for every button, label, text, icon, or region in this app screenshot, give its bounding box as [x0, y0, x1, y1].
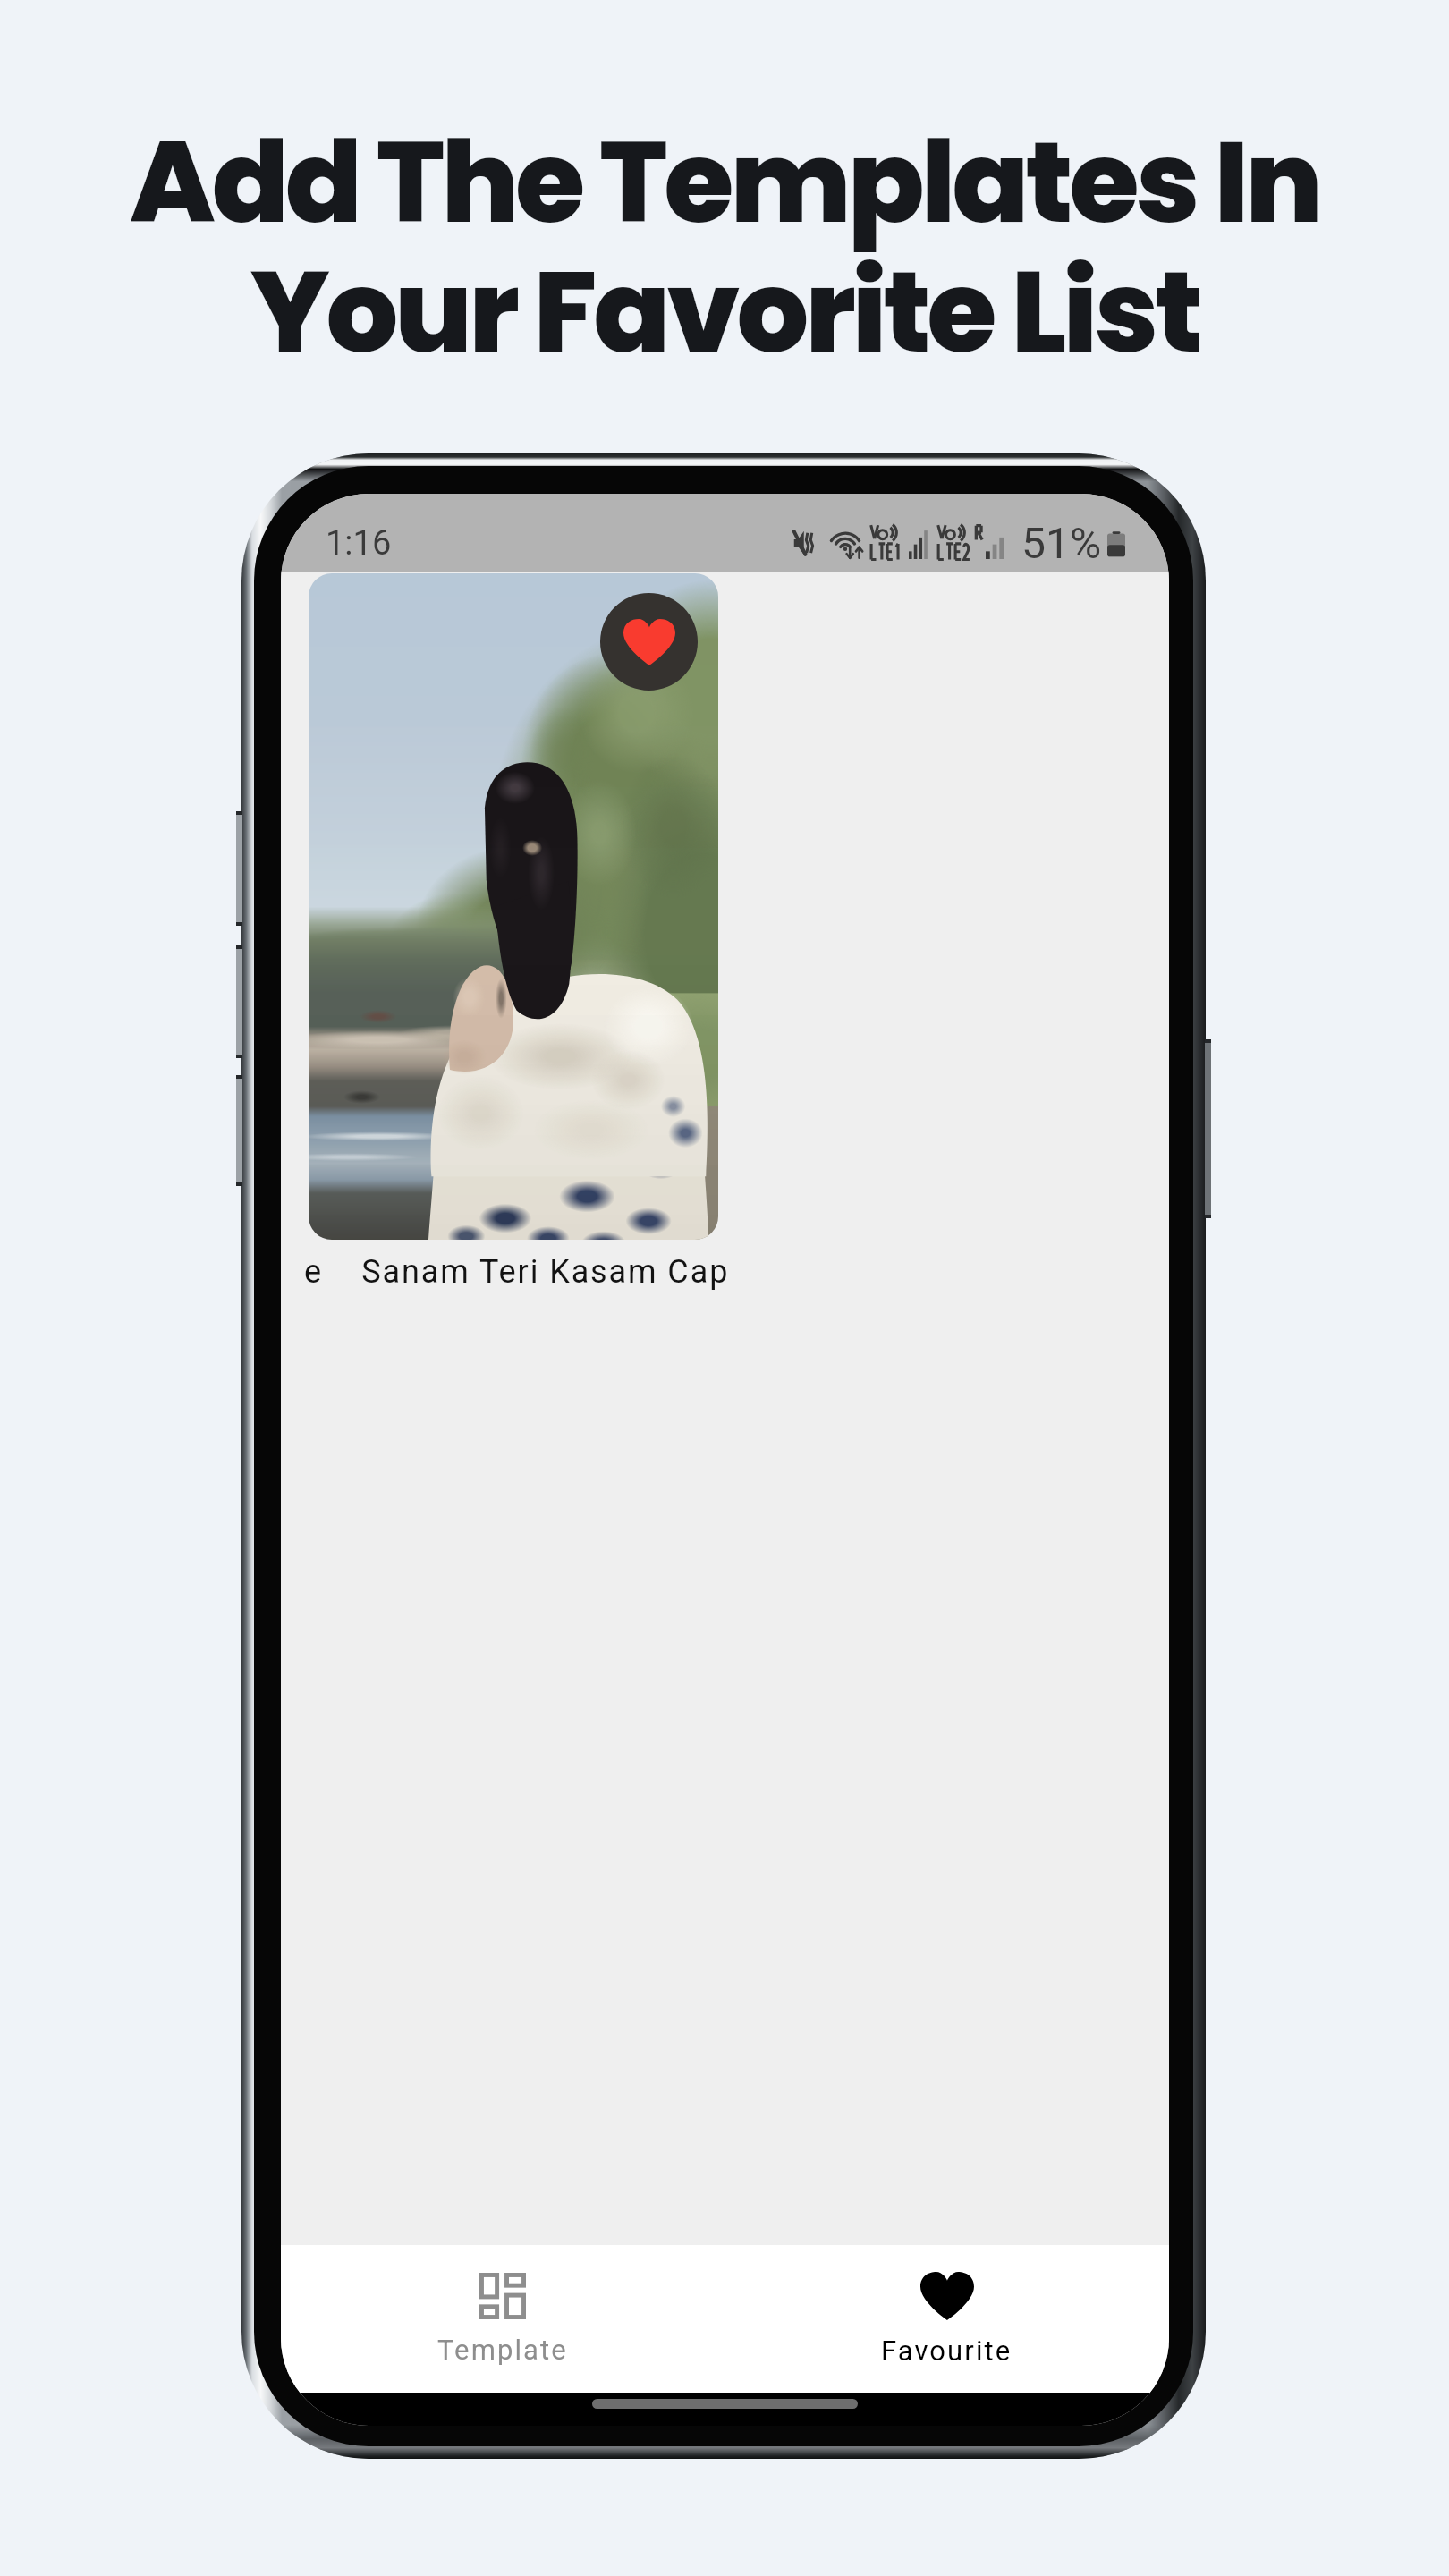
staticText: 51%: [1021, 518, 1102, 568]
staticText: 1:16: [326, 523, 392, 563]
staticText: e Sanam Teri Kasam Capcut Template: [304, 1253, 728, 1291]
staticText: Add The Templates In Your Favorite List: [130, 103, 1319, 392]
button[interactable]: Remove from favourites: [600, 593, 698, 691]
button[interactable]: e Sanam Teri Kasam Capcut Template: [304, 1253, 728, 1300]
button[interactable]: Favourite: [724, 2245, 1169, 2393]
staticText: Favourite: [881, 2334, 1013, 2367]
button[interactable]: Template: [281, 2245, 724, 2393]
staticText: Template: [437, 2334, 568, 2366]
button[interactable]: Remove from favourites: [309, 573, 718, 1240]
